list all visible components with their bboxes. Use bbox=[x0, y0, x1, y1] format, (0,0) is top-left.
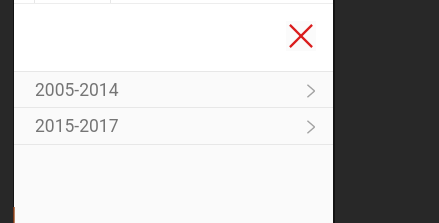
staticText: 2015-2017 bbox=[35, 116, 119, 137]
button[interactable]: 2015-2017 bbox=[14, 108, 333, 144]
button[interactable]: 2005-2014 bbox=[14, 72, 333, 107]
button[interactable]: Close bbox=[286, 21, 316, 51]
staticText: 2005-2014 bbox=[35, 80, 119, 101]
